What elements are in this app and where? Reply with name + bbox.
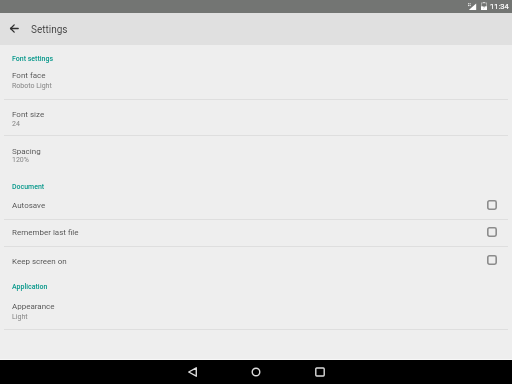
staticText: Keep screen on (12, 257, 67, 266)
staticText: Font face (12, 71, 46, 80)
staticText: Spacing (12, 147, 41, 156)
staticText: Application (12, 283, 48, 291)
staticText: Font size (12, 110, 45, 119)
staticText: 120% (12, 156, 29, 164)
button[interactable]: Keep screen on (0, 247, 512, 274)
staticText: Settings (31, 24, 68, 36)
button[interactable]: Back (160, 360, 224, 384)
button[interactable]: Remember last file (0, 220, 512, 246)
button[interactable]: Font size (0, 100, 512, 135)
button[interactable]: Recent apps (288, 360, 352, 384)
button[interactable]: Appearance (0, 294, 512, 329)
button[interactable]: Home (224, 360, 288, 384)
staticText: Light (12, 313, 28, 321)
staticText: Font settings (12, 55, 54, 63)
button[interactable]: Autosave (487, 200, 497, 210)
button[interactable]: Remember last file (487, 227, 497, 237)
staticText: Autosave (12, 201, 46, 210)
button[interactable]: Keep screen on (487, 255, 497, 265)
staticText: 11:34 (490, 2, 509, 11)
button[interactable]: Font face (0, 64, 512, 99)
staticText: Roboto Light (12, 82, 52, 90)
button[interactable]: Autosave (0, 192, 512, 219)
staticText: 24 (12, 120, 20, 128)
staticText: Document (12, 183, 45, 191)
button[interactable]: Spacing (0, 136, 512, 171)
button[interactable]: Back (0, 13, 28, 45)
staticText: Appearance (12, 302, 55, 311)
staticText: Remember last file (12, 228, 79, 237)
